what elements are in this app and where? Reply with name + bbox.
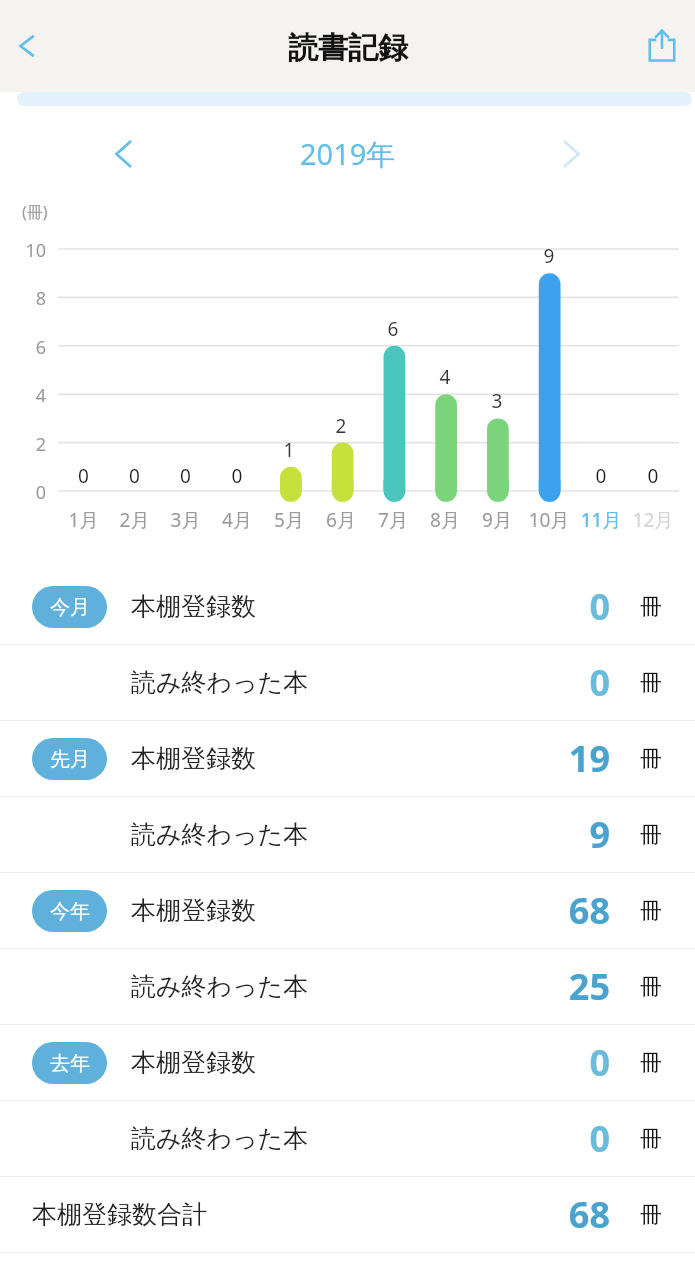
staticText: 1 (263, 437, 315, 463)
staticText: 0 (490, 658, 610, 707)
button[interactable]: 読み終わった本 (0, 1101, 695, 1176)
staticText: 8月 (419, 507, 471, 533)
button[interactable]: 本棚登録数合計 (0, 1177, 695, 1252)
staticText: 19 (490, 734, 610, 783)
button[interactable]: 先月 (0, 721, 695, 796)
staticText: 3 (471, 388, 523, 414)
staticText: 4 (419, 364, 471, 390)
staticText: 本棚登録数 (131, 1047, 256, 1078)
staticText: 3月 (160, 507, 211, 533)
button[interactable]: 読み終わった本 (0, 949, 695, 1024)
staticText: 0 (490, 582, 610, 631)
staticText: (冊) (22, 201, 48, 223)
staticText: 本棚登録数 (131, 895, 256, 926)
staticText: 2019年 (300, 134, 396, 174)
staticText: 25 (490, 962, 610, 1011)
staticText: 冊 (640, 1125, 662, 1153)
staticText: 本棚登録数 (131, 591, 256, 622)
staticText: 読み終わった本 (131, 667, 309, 698)
staticText: 冊 (640, 897, 662, 925)
staticText: 本棚登録数 (131, 743, 256, 774)
staticText: 冊 (640, 593, 662, 621)
staticText: 6 (0, 335, 46, 360)
staticText: 読み終わった本 (131, 819, 309, 850)
staticText: 読み終わった本 (131, 1123, 309, 1154)
staticText: 0 (627, 463, 679, 489)
staticText: 68 (490, 1190, 610, 1239)
staticText: 冊 (640, 821, 662, 849)
staticText: 読み終わった本 (131, 971, 309, 1002)
button[interactable]: Next year (539, 122, 603, 186)
staticText: 先月 (50, 747, 90, 772)
staticText: 11月 (575, 507, 627, 533)
staticText: 冊 (640, 973, 662, 1001)
staticText: 冊 (640, 1201, 662, 1229)
staticText: 10月 (523, 507, 575, 533)
staticText: 4月 (211, 507, 263, 533)
staticText: 9 (490, 810, 610, 859)
staticText: 今月 (50, 595, 90, 620)
staticText: 0 (109, 463, 160, 489)
staticText: 0 (58, 463, 109, 489)
staticText: 今年 (50, 899, 90, 924)
staticText: 5月 (263, 507, 315, 533)
staticText: 0 (575, 463, 627, 489)
staticText: 6 (367, 316, 419, 342)
button[interactable]: 去年 (0, 1025, 695, 1100)
staticText: 12月 (627, 507, 679, 533)
staticText: 冊 (640, 1049, 662, 1077)
staticText: 9月 (471, 507, 523, 533)
button[interactable]: 読み終わった本 (0, 645, 695, 720)
staticText: 0 (160, 463, 211, 489)
staticText: 7月 (367, 507, 419, 533)
staticText: 0 (490, 1038, 610, 1087)
staticText: 本棚登録数合計 (32, 1199, 207, 1230)
staticText: 2月 (109, 507, 160, 533)
staticText: 読書記録 (288, 29, 408, 67)
staticText: 0 (211, 463, 263, 489)
staticText: 1月 (58, 507, 109, 533)
staticText: 8 (0, 286, 46, 311)
staticText: 2 (315, 413, 367, 439)
staticText: 6月 (315, 507, 367, 533)
staticText: 9 (523, 243, 575, 269)
button[interactable]: Share (629, 10, 695, 82)
staticText: 2 (0, 432, 46, 457)
button[interactable]: 今年 (0, 873, 695, 948)
staticText: 68 (490, 886, 610, 935)
button[interactable]: Back (0, 11, 54, 81)
staticText: 冊 (640, 745, 662, 773)
button[interactable]: Previous year (92, 122, 156, 186)
staticText: 4 (0, 383, 46, 408)
staticText: 10 (0, 238, 46, 263)
staticText: 冊 (640, 669, 662, 697)
staticText: 0 (490, 1114, 610, 1163)
button[interactable]: 今月 (0, 569, 695, 644)
button[interactable]: 読み終わった本 (0, 797, 695, 872)
staticText: 去年 (50, 1051, 90, 1076)
staticText: 0 (0, 480, 46, 505)
